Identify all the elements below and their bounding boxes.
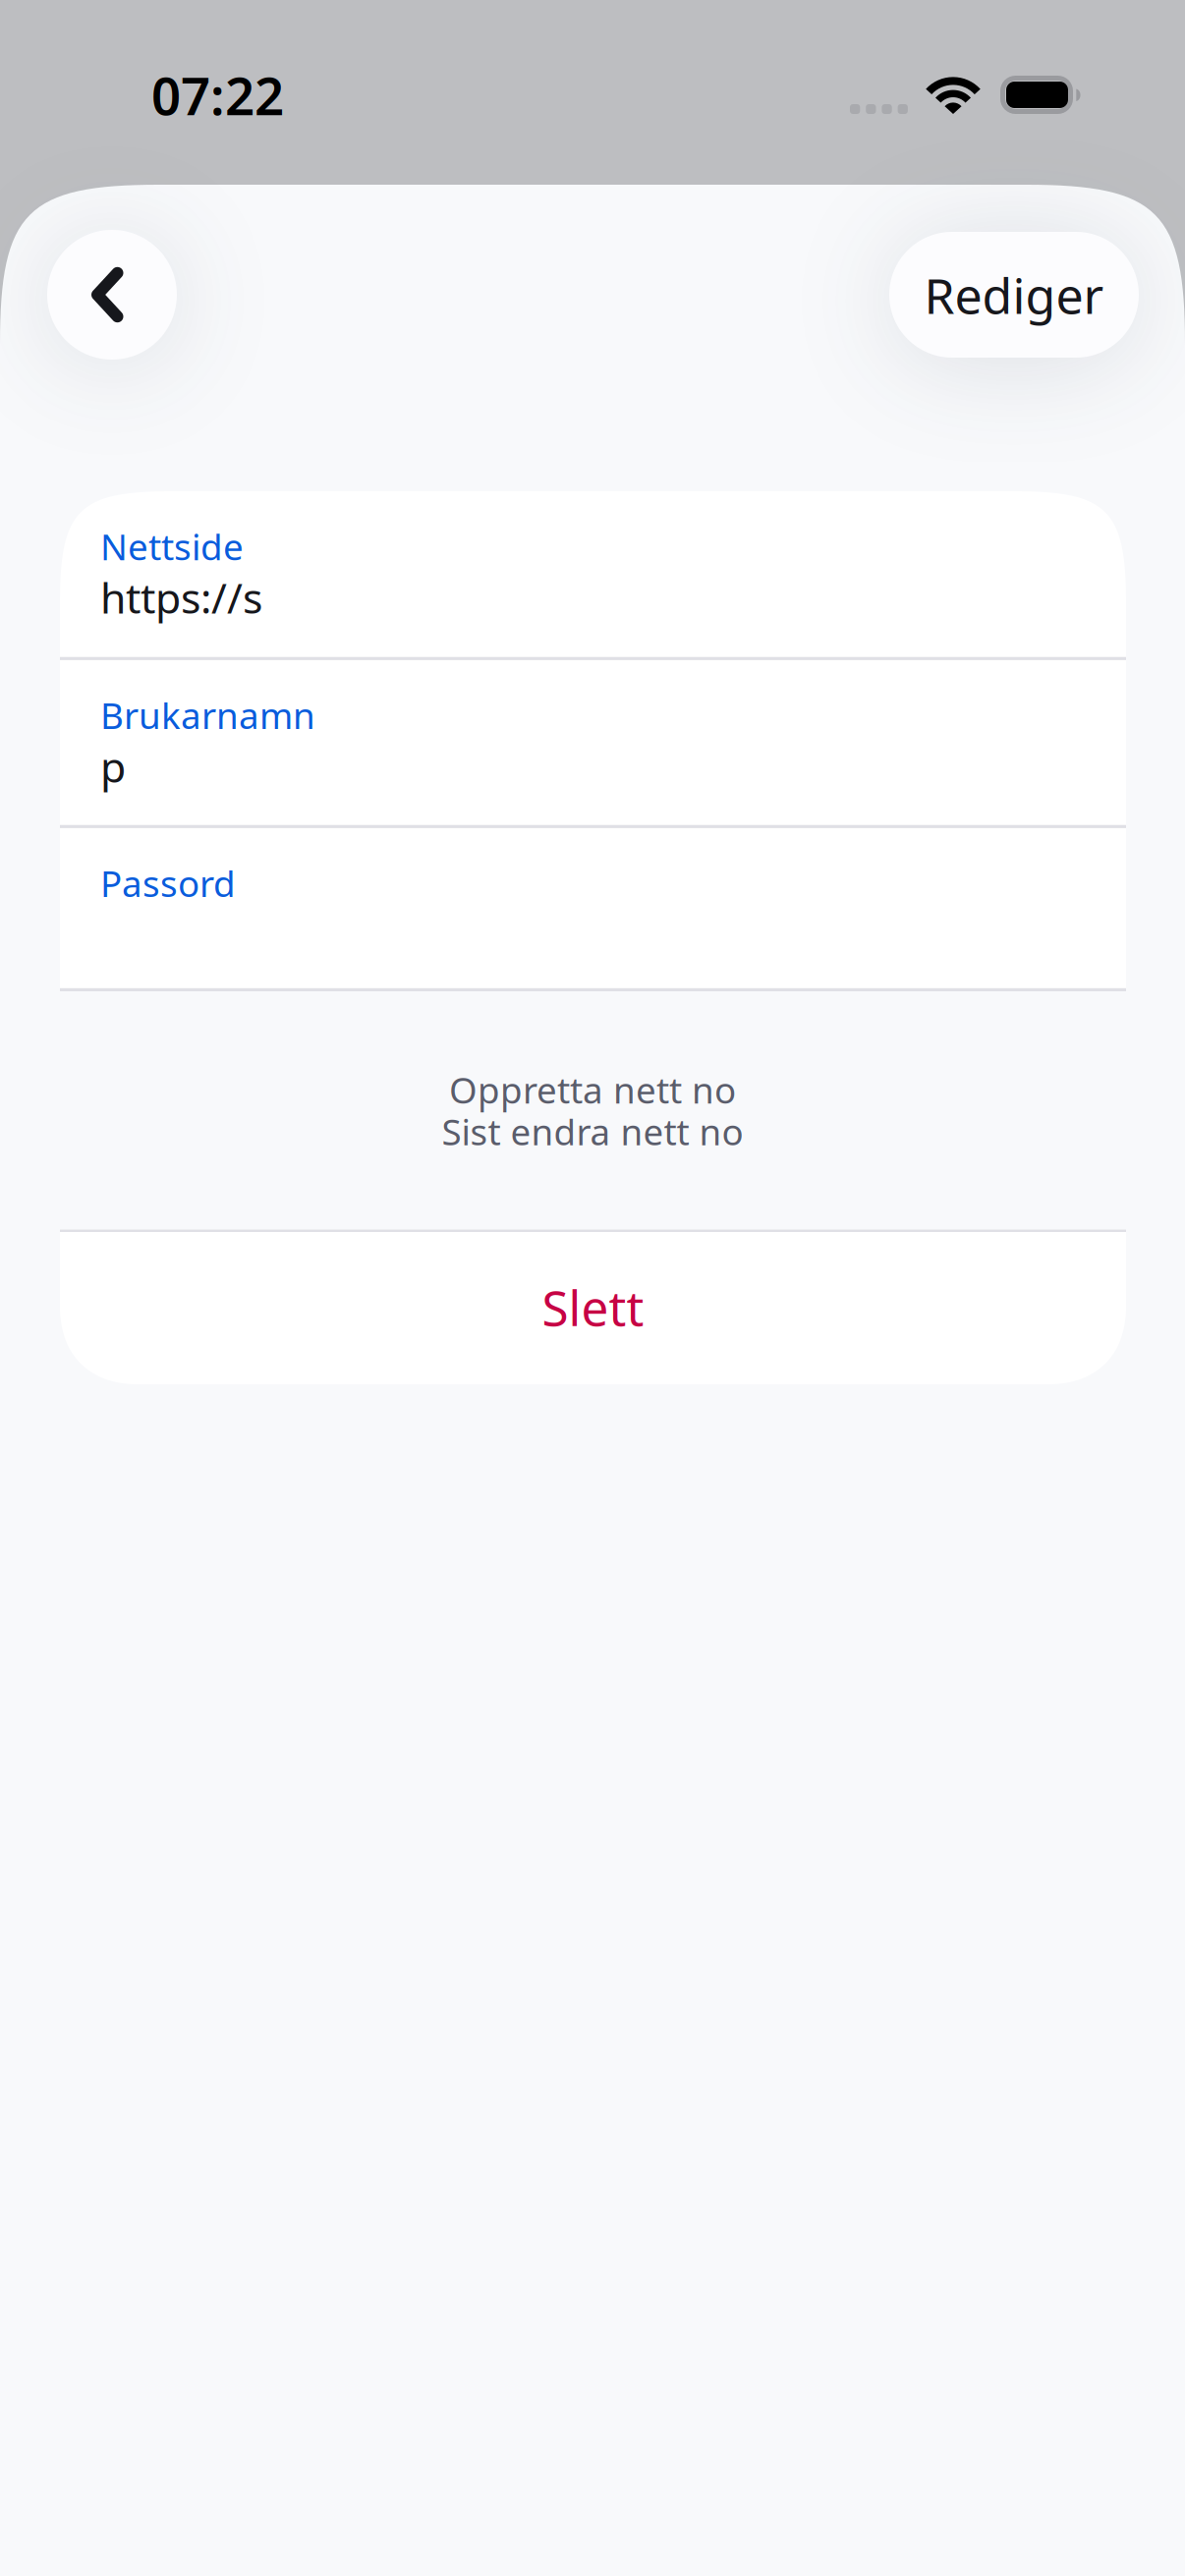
- button[interactable]: Passord: [60, 828, 1126, 988]
- staticText: 07:22: [151, 60, 284, 130]
- staticText: Passord: [100, 859, 236, 908]
- button[interactable]: Slett: [60, 1232, 1126, 1384]
- staticText: Rediger: [924, 261, 1104, 328]
- button[interactable]: Nettside: [60, 491, 1126, 657]
- staticText: https://s: [100, 569, 262, 626]
- staticText: Nettside: [100, 522, 244, 571]
- button[interactable]: Rediger: [889, 232, 1139, 358]
- staticText: Sist endra nett no: [442, 1107, 743, 1156]
- button[interactable]: Back: [47, 230, 177, 360]
- staticText: Brukarnamn: [100, 691, 315, 740]
- staticText: Oppretta nett no: [449, 1065, 736, 1114]
- staticText: Slett: [542, 1274, 644, 1340]
- staticText: p: [100, 738, 126, 795]
- button[interactable]: Brukarnamn: [60, 660, 1126, 825]
